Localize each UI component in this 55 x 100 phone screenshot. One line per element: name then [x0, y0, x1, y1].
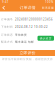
staticText: 2024-08-12 10:30:22 — [13, 25, 48, 29]
button[interactable]: 立即评价 — [0, 50, 55, 56]
staticText: 评价后可获得积分奖励，感谢您的支持 — [2, 57, 53, 61]
staticText: 2024081200000123456 — [13, 18, 53, 21]
staticText: 顺丰速运 包邮 — [13, 40, 34, 44]
staticText: 100% — [45, 0, 53, 4]
staticText: 订单状态 — [1, 33, 13, 36]
staticText: 下单时间 — [1, 25, 13, 29]
staticText: 确认收货 — [40, 37, 52, 40]
staticText: 立即评价 — [19, 50, 35, 55]
staticText: 配送方式 — [1, 40, 13, 44]
button[interactable]: 联系客服 — [42, 4, 54, 11]
staticText: 等待收货 — [13, 33, 27, 36]
staticText: 9:41 — [2, 0, 9, 4]
staticText: 订单详情 — [19, 5, 35, 10]
button[interactable]: 确认收货 — [37, 36, 54, 41]
button[interactable]: Back — [1, 4, 6, 11]
staticText: 联系客服 — [42, 6, 54, 9]
staticText: 订单编号 — [1, 18, 13, 21]
